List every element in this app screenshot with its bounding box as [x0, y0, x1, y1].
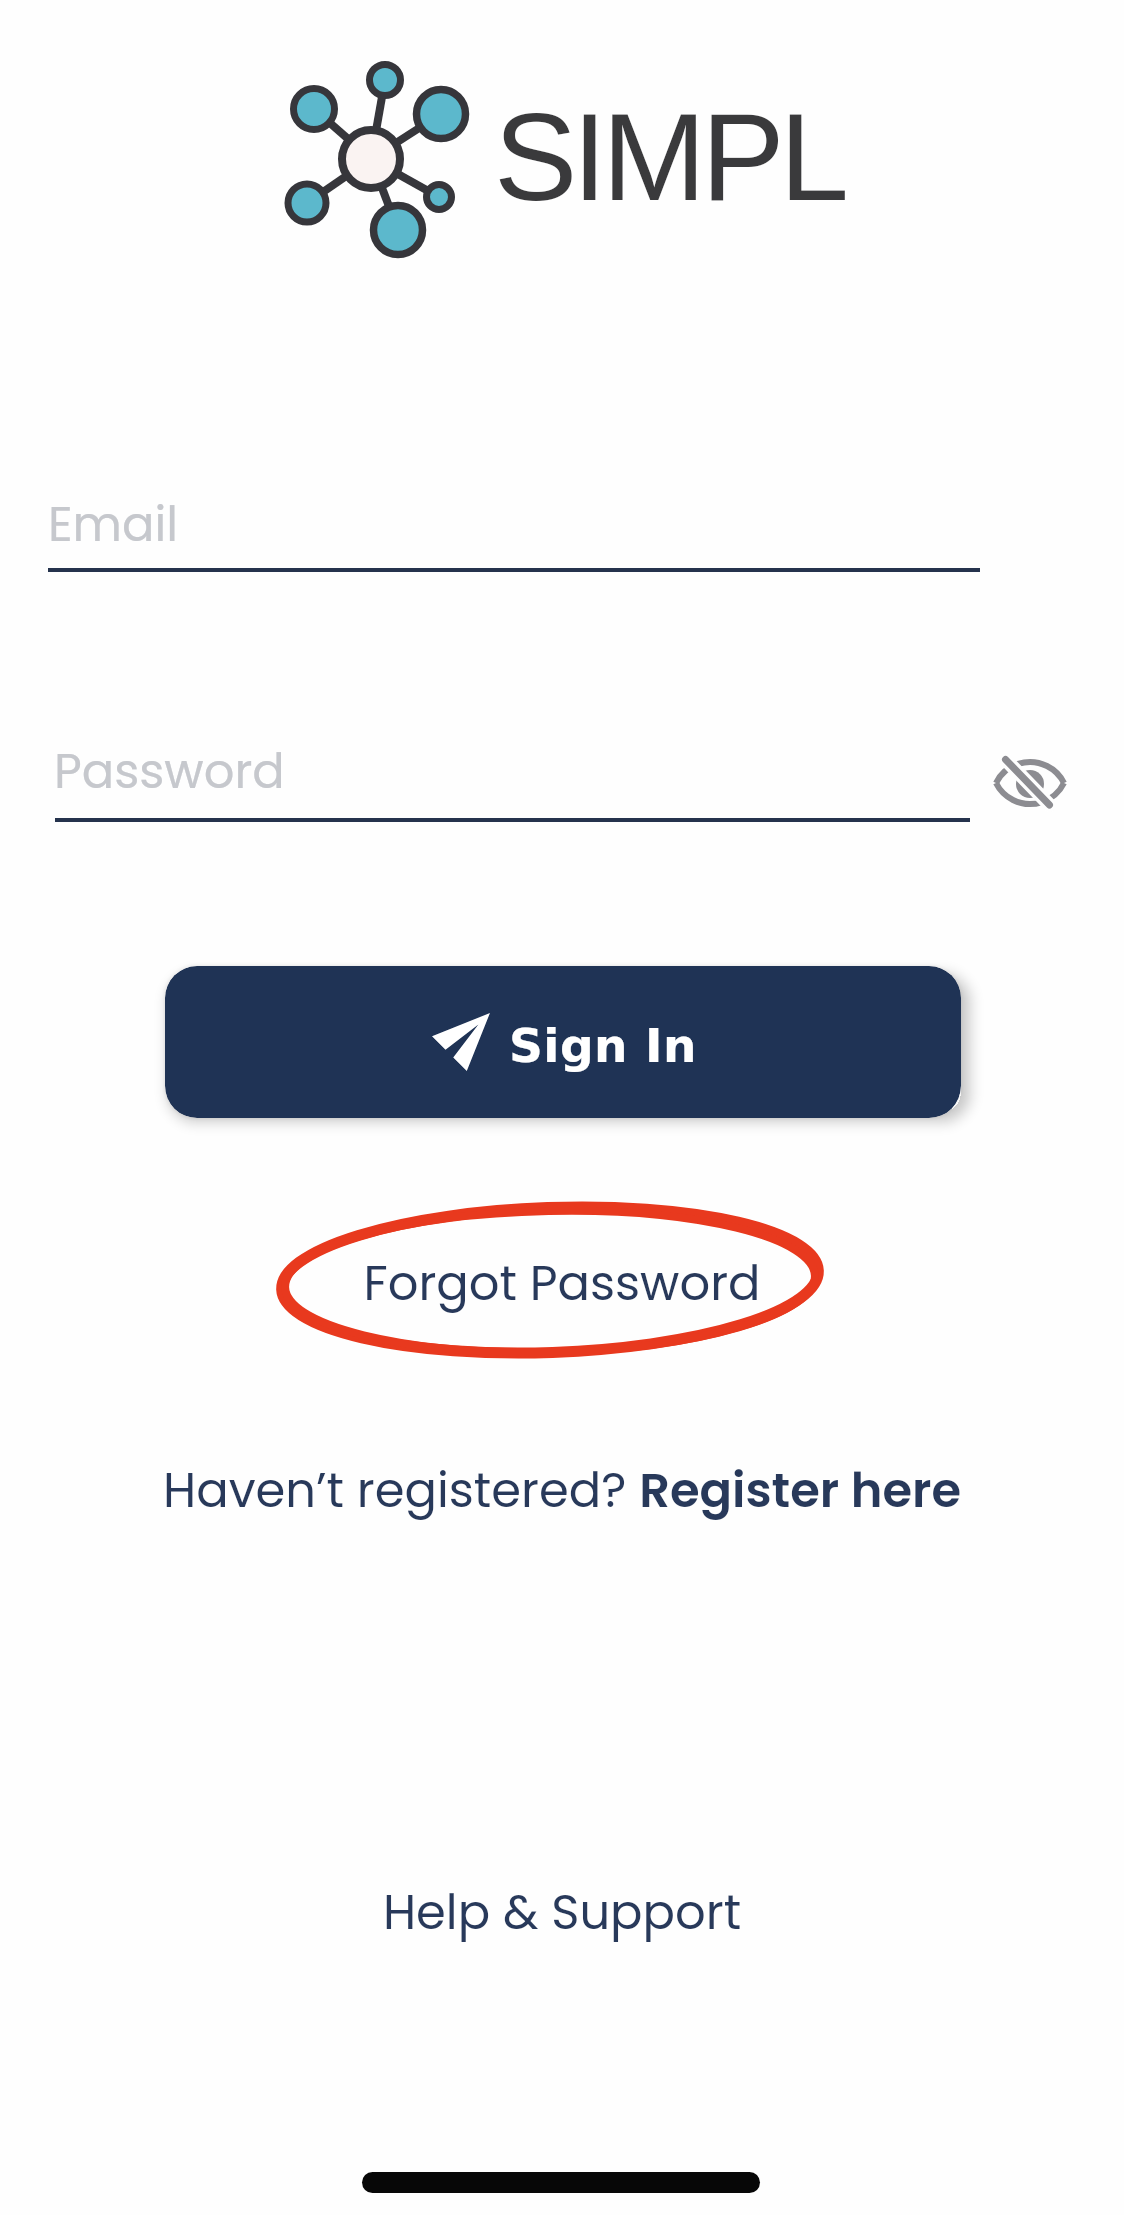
button[interactable]: Help & Support: [0, 1879, 1124, 1946]
button[interactable]: Forgot Password: [0, 1250, 1124, 1317]
staticText: SIMPL: [494, 87, 845, 227]
button[interactable]: [990, 750, 1070, 816]
staticText: Email: [48, 491, 179, 558]
staticText: Sign In: [509, 1018, 697, 1073]
button[interactable]: Sign In: [165, 966, 961, 1118]
button[interactable]: Haven’t registered? Register here: [0, 1457, 1124, 1524]
staticText: Password: [54, 738, 285, 805]
